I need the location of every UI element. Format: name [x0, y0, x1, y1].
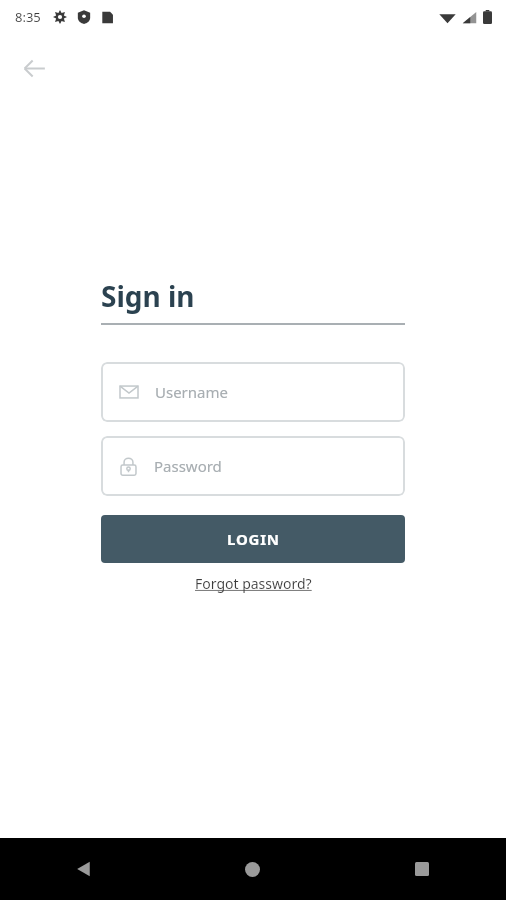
button[interactable]: LOGIN: [101, 515, 405, 563]
staticText: Password: [154, 456, 222, 476]
staticText: Username: [155, 382, 228, 402]
button[interactable]: Recent apps: [337, 838, 506, 900]
staticText: LOGIN: [227, 529, 280, 549]
button[interactable]: Home: [168, 838, 337, 900]
staticText: Forgot password?: [195, 574, 312, 593]
staticText: Sign in: [101, 277, 195, 315]
button[interactable]: Back: [0, 838, 168, 900]
button[interactable]: Password: [101, 436, 405, 496]
button[interactable]: Back: [10, 44, 58, 92]
button[interactable]: Forgot password?: [191, 572, 316, 595]
button[interactable]: Username: [101, 362, 405, 422]
staticText: 8:35: [15, 8, 41, 26]
